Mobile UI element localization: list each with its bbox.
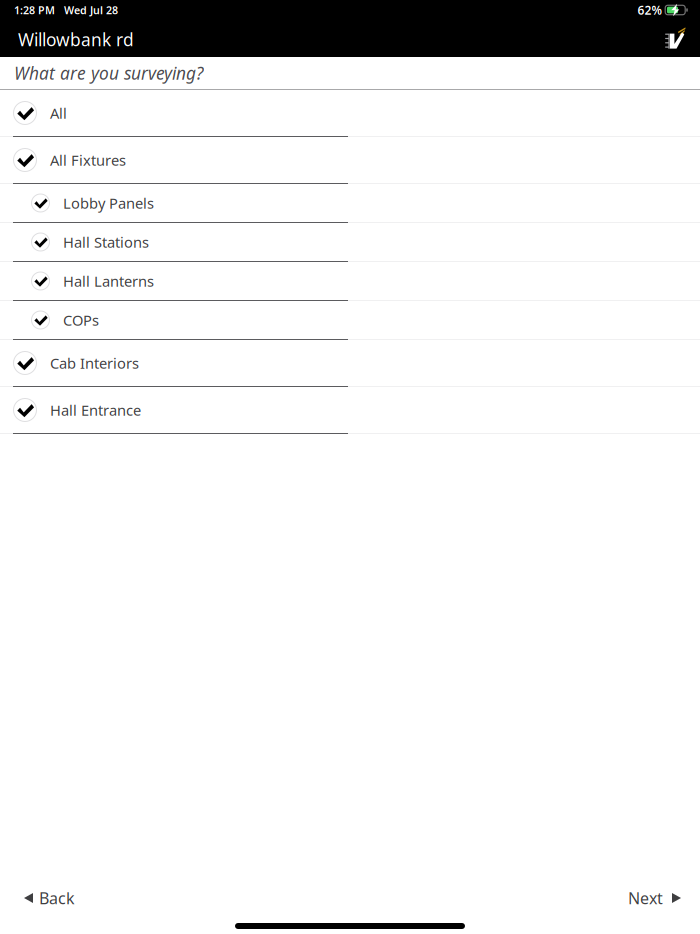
staticText: Hall Entrance bbox=[50, 400, 141, 420]
staticText: Wed Jul 28 bbox=[64, 3, 118, 17]
button[interactable]: All Fixtures bbox=[0, 137, 700, 184]
button[interactable]: Hall Lanterns bbox=[0, 262, 700, 301]
staticText: Willowbank rd bbox=[18, 28, 134, 51]
staticText: Lobby Panels bbox=[63, 193, 154, 213]
staticText: Back bbox=[39, 887, 75, 909]
button[interactable]: COPs bbox=[0, 301, 700, 340]
staticText: 1:28 PM bbox=[14, 3, 55, 17]
button[interactable]: Hall Stations bbox=[0, 223, 700, 262]
button[interactable]: Lobby Panels bbox=[0, 184, 700, 223]
staticText: COPs bbox=[63, 310, 99, 330]
staticText: What are you surveying? bbox=[14, 61, 203, 84]
staticText: 62% bbox=[637, 2, 662, 18]
button[interactable]: Cab Interiors bbox=[0, 340, 700, 387]
button[interactable]: Hall Entrance bbox=[0, 387, 700, 434]
staticText: All Fixtures bbox=[50, 150, 126, 170]
button[interactable]: All bbox=[0, 90, 700, 137]
button[interactable]: Home bbox=[660, 23, 690, 54]
button[interactable]: Back bbox=[12, 878, 87, 918]
staticText: Cab Interiors bbox=[50, 353, 139, 373]
staticText: Next bbox=[628, 887, 663, 909]
button[interactable]: Next bbox=[616, 878, 688, 918]
staticText: Hall Stations bbox=[63, 232, 149, 252]
staticText: All bbox=[50, 103, 67, 123]
staticText: Hall Lanterns bbox=[63, 271, 154, 291]
